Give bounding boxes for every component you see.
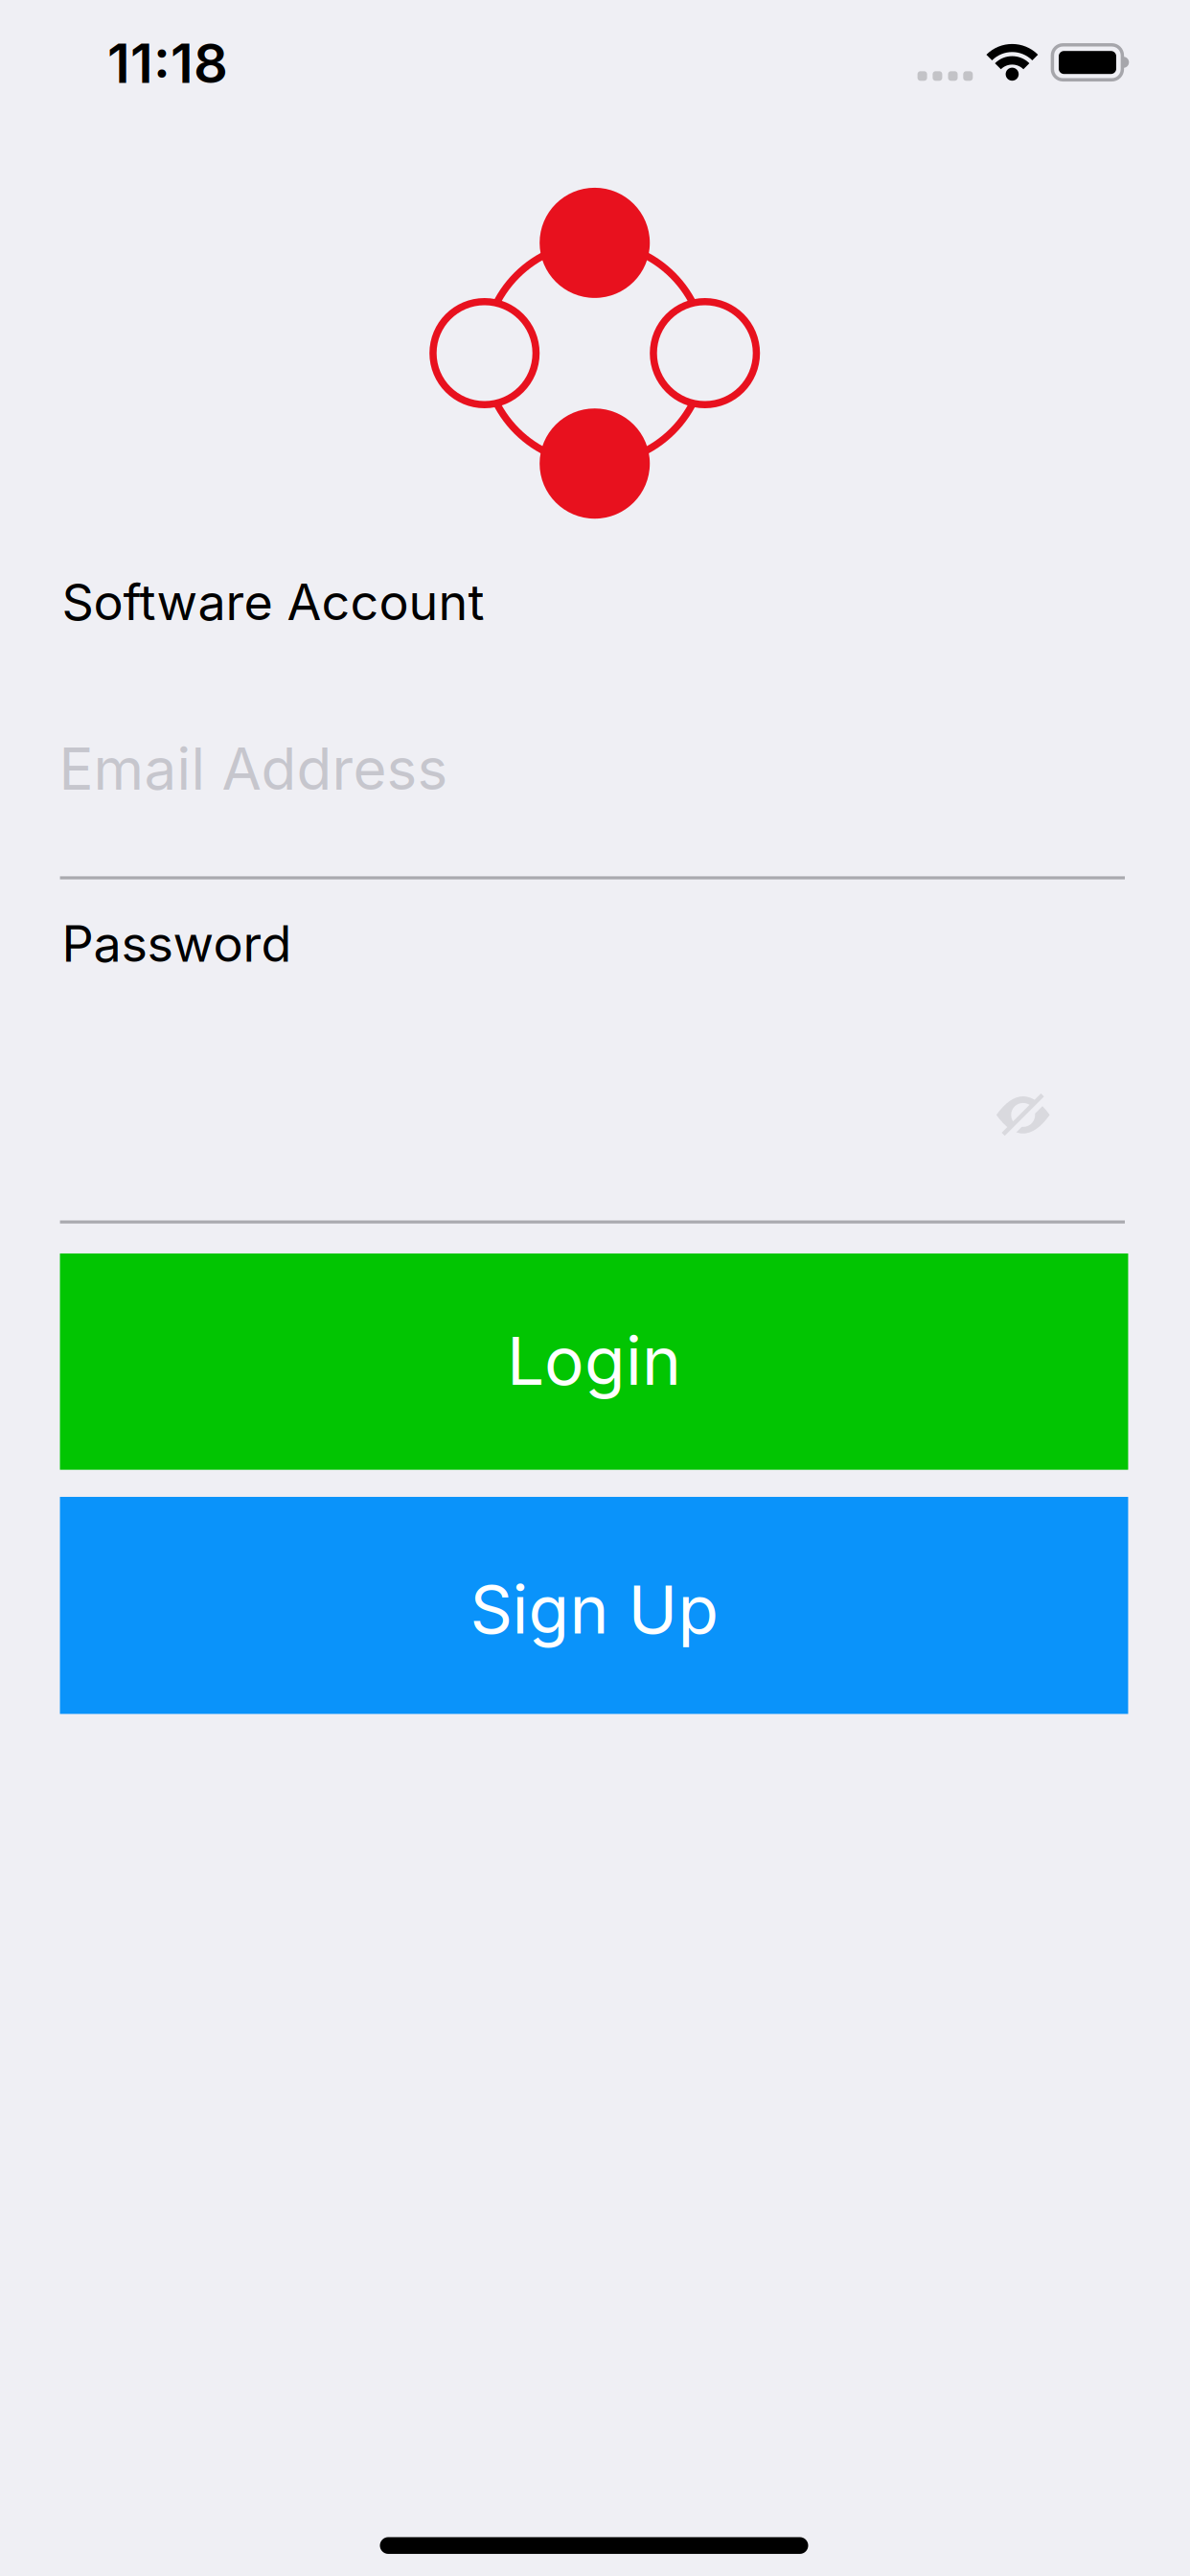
staticText: Password	[62, 914, 292, 973]
button[interactable]: Sign Up	[60, 1497, 1128, 1714]
staticText: Login	[507, 1321, 681, 1400]
staticText: Sign Up	[470, 1570, 718, 1648]
button[interactable]: Show password	[982, 1078, 1068, 1155]
button[interactable]: Login	[60, 1253, 1128, 1470]
staticText: Email Address	[59, 735, 448, 803]
staticText: Software Account	[62, 573, 484, 631]
staticText: 11:18	[107, 32, 228, 95]
